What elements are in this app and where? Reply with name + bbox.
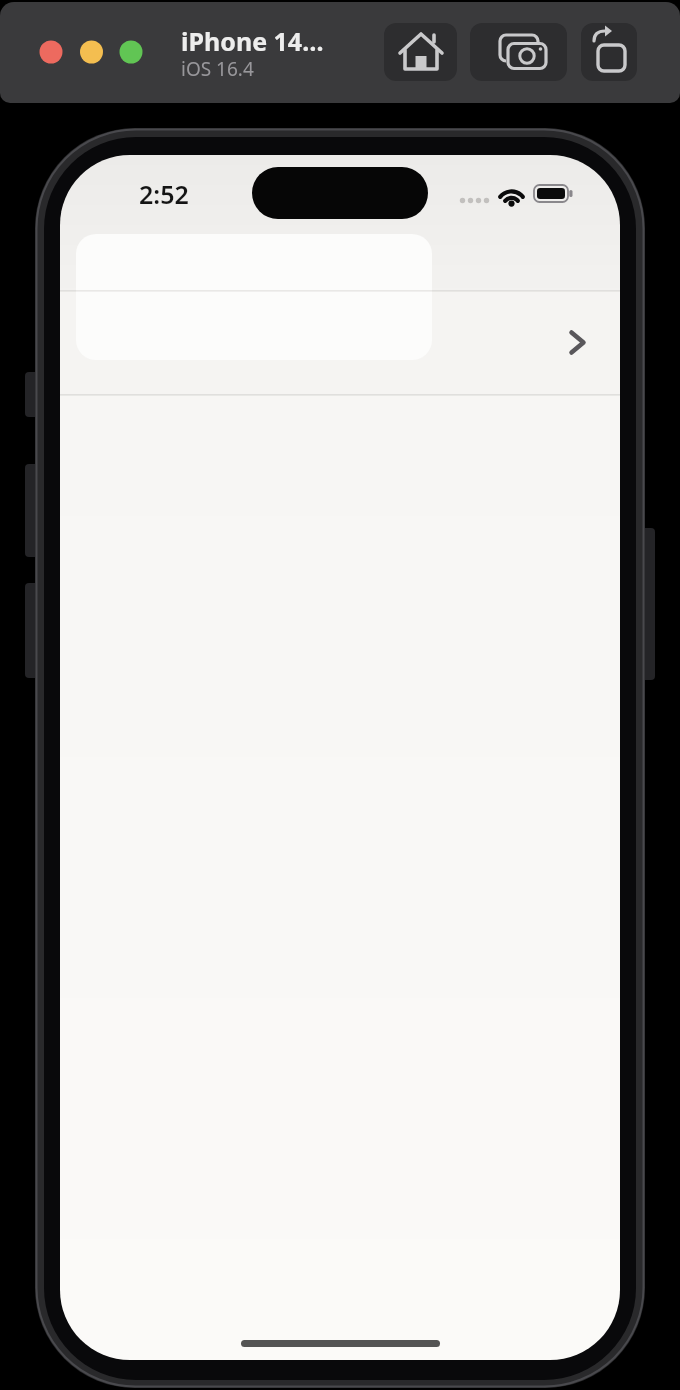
- button[interactable]: [470, 23, 567, 81]
- staticText: iOS 16.4: [181, 56, 254, 82]
- staticText: 2:52: [139, 177, 189, 211]
- staticText: iPhone 14…: [181, 24, 324, 58]
- button[interactable]: [60, 290, 620, 394]
- button[interactable]: [581, 23, 637, 81]
- button[interactable]: [384, 23, 457, 81]
